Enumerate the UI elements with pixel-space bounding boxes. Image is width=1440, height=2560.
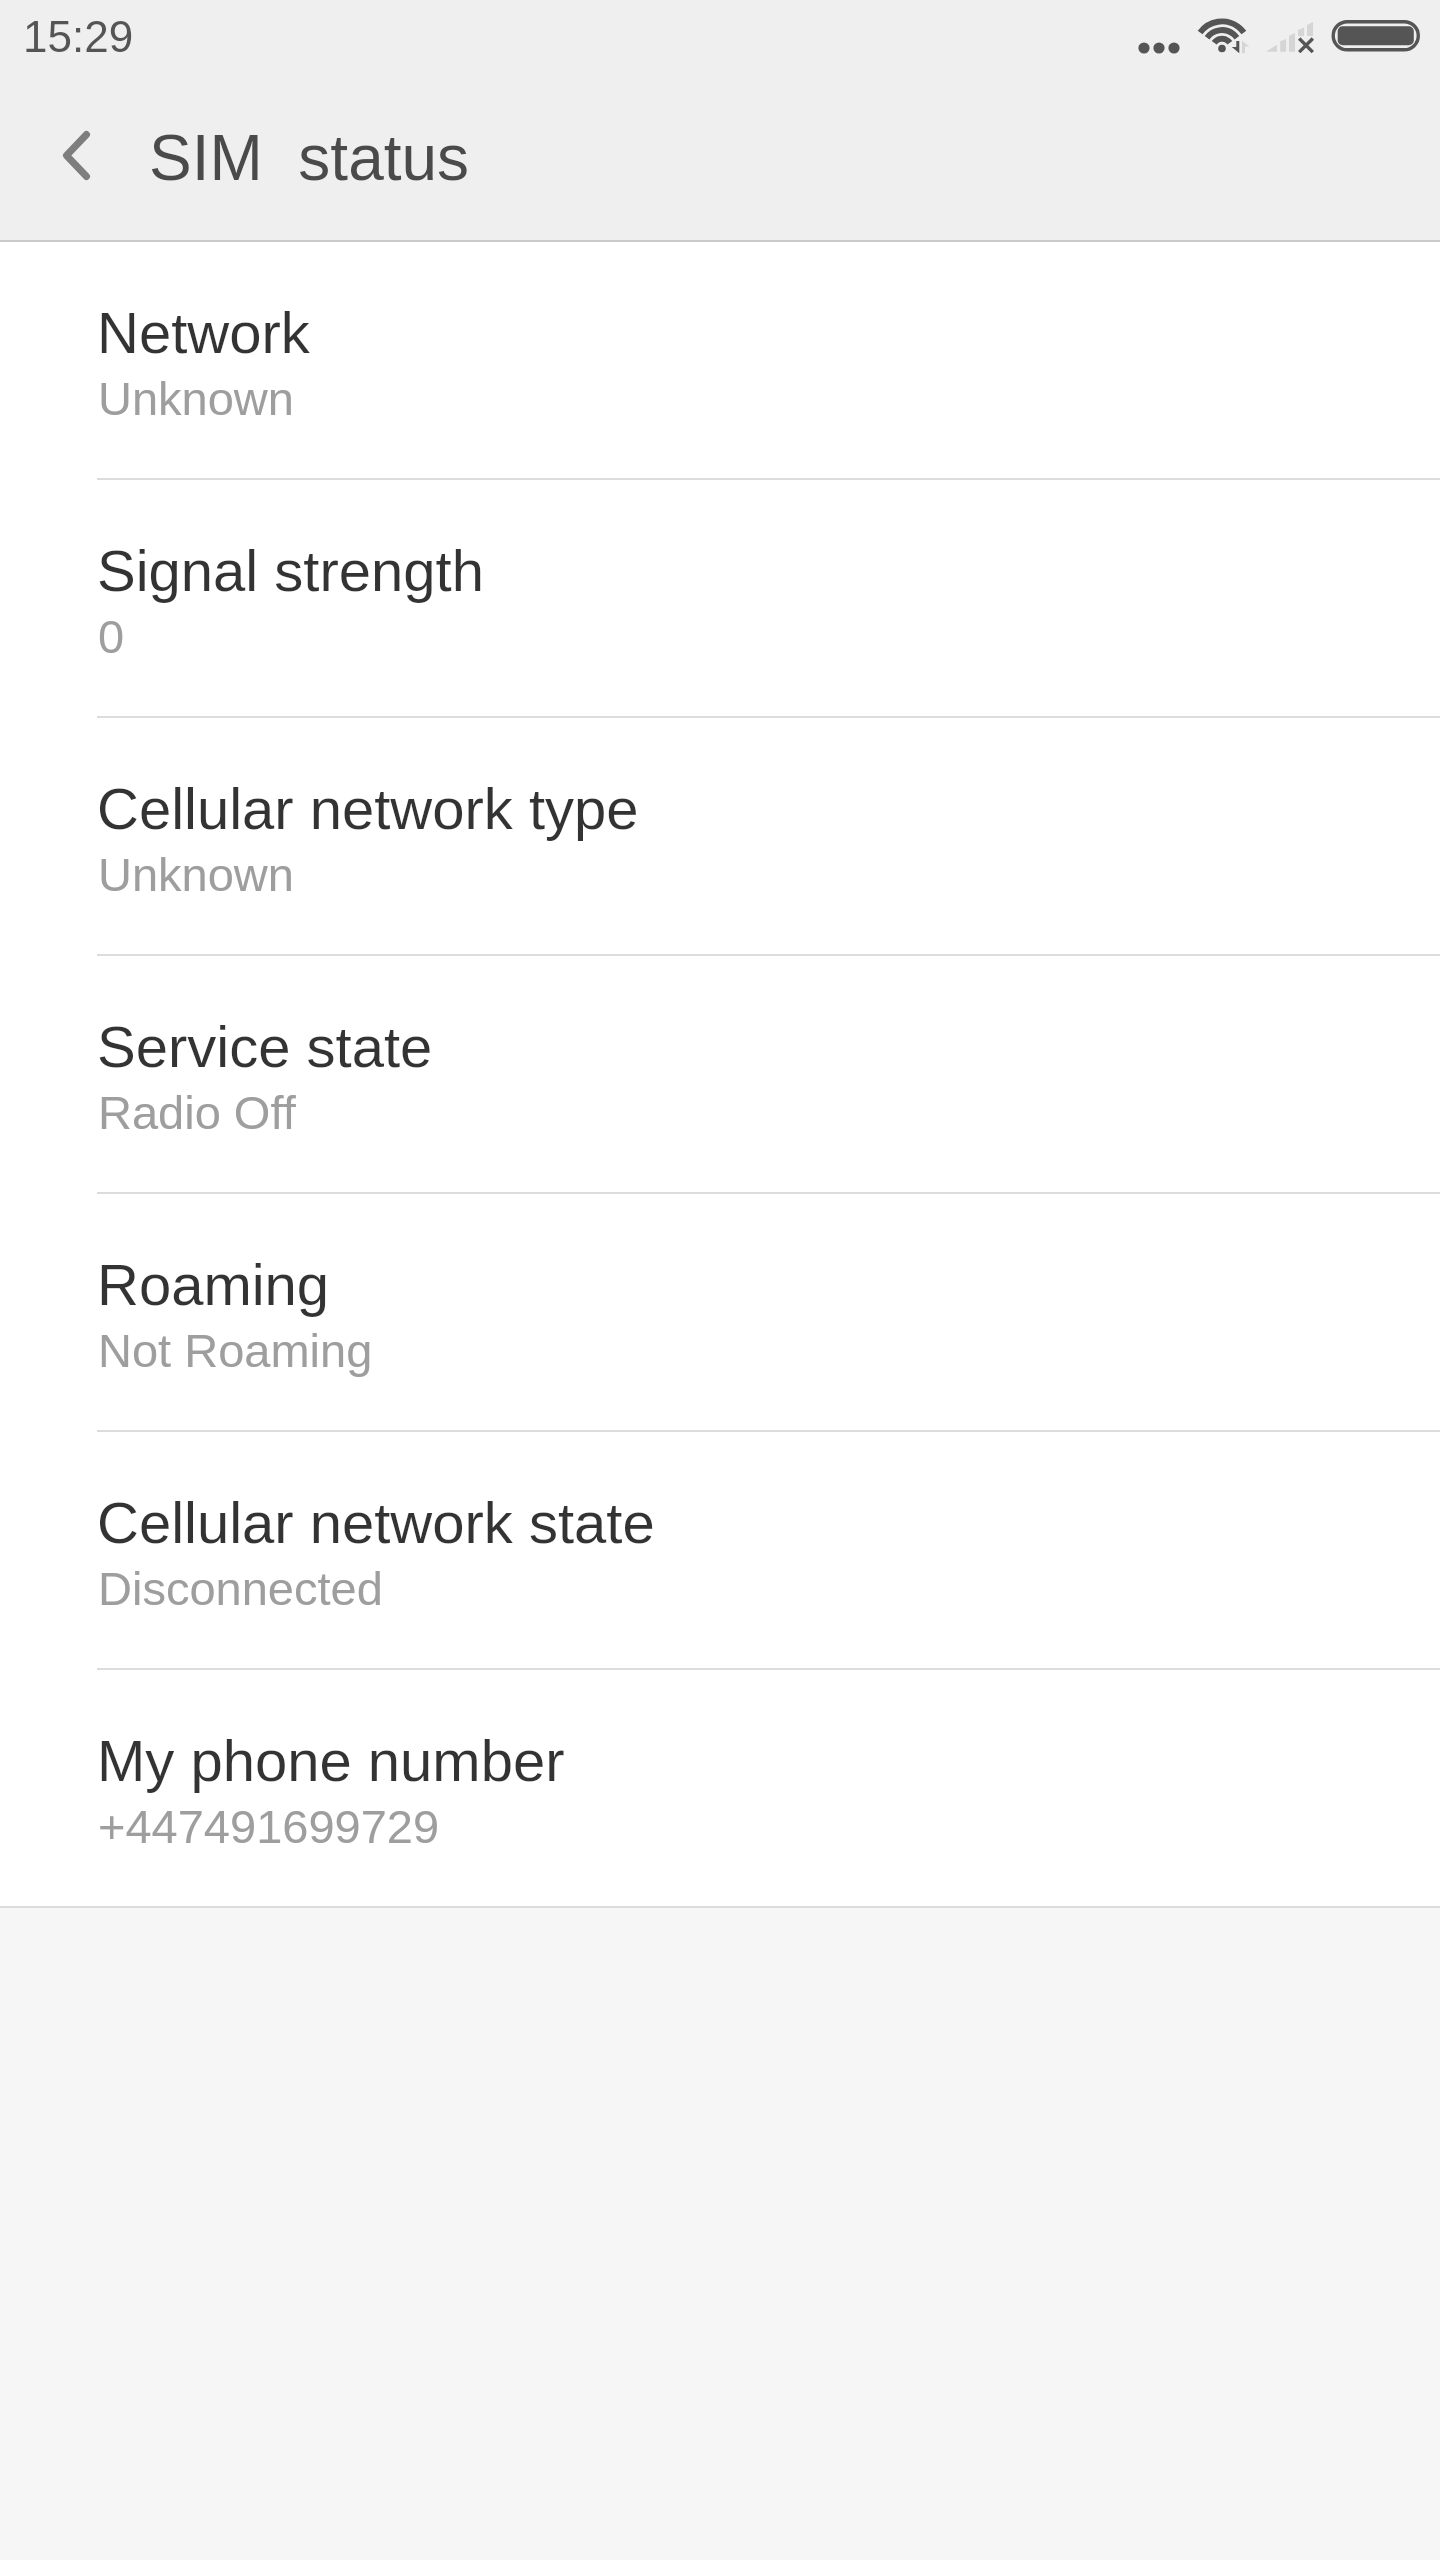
button[interactable]: Roaming: [0, 1194, 1440, 1432]
staticText: Network: [97, 300, 310, 365]
staticText: Not Roaming: [98, 1324, 373, 1377]
staticText: Cellular network type: [97, 776, 639, 841]
staticText: My phone number: [97, 1728, 565, 1793]
staticText: SIM status: [149, 122, 470, 194]
button[interactable]: Service state: [0, 956, 1440, 1194]
staticText: Unknown: [98, 372, 294, 425]
button[interactable]: Cellular network type: [0, 718, 1440, 956]
staticText: Radio Off: [98, 1086, 296, 1139]
button[interactable]: My phone number: [0, 1670, 1440, 1908]
staticText: 15:29: [23, 12, 134, 61]
staticText: Unknown: [98, 848, 294, 901]
staticText: Signal strength: [97, 538, 484, 603]
button[interactable]: Cellular network state: [0, 1432, 1440, 1670]
staticText: 0: [98, 610, 125, 663]
staticText: +447491699729: [98, 1800, 440, 1853]
button[interactable]: Network: [0, 242, 1440, 480]
button[interactable]: Back: [16, 97, 136, 227]
staticText: Cellular network state: [97, 1490, 655, 1555]
staticText: Roaming: [97, 1252, 330, 1317]
button[interactable]: Signal strength: [0, 480, 1440, 718]
staticText: Disconnected: [98, 1562, 383, 1615]
staticText: Service state: [97, 1014, 433, 1079]
